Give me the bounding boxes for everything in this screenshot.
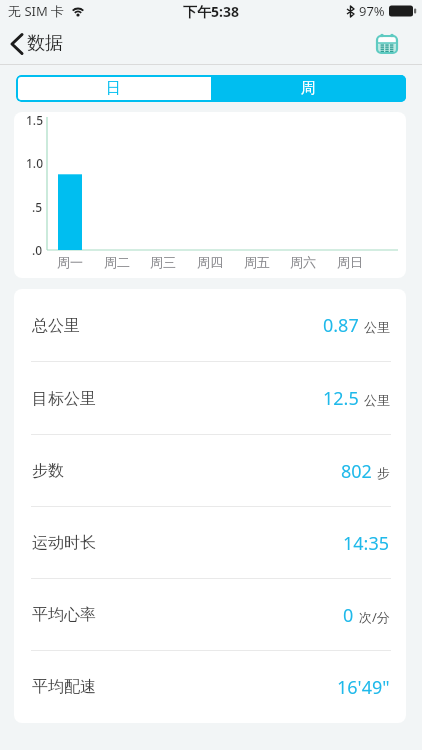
- button[interactable]: 平均配速: [14, 651, 406, 723]
- staticText: 步: [377, 465, 390, 481]
- button[interactable]: 目标公里: [14, 362, 406, 435]
- staticText: 周三: [150, 254, 176, 270]
- button[interactable]: 周: [211, 75, 406, 102]
- staticText: 周日: [337, 254, 363, 270]
- staticText: 公里: [364, 392, 390, 408]
- staticText: 下午5:38: [183, 2, 239, 21]
- staticText: 周一: [57, 254, 83, 270]
- staticText: 12.5: [323, 386, 359, 411]
- staticText: 总公里: [32, 316, 80, 336]
- staticText: 次/分: [359, 608, 390, 626]
- staticText: .5: [32, 199, 43, 215]
- staticText: 周六: [290, 254, 316, 270]
- button[interactable]: [374, 30, 400, 56]
- staticText: 步数: [32, 461, 64, 481]
- staticText: 日: [106, 79, 121, 98]
- staticText: 平均配速: [32, 677, 96, 697]
- staticText: 运动时长: [32, 533, 96, 553]
- staticText: 16'49": [337, 675, 390, 700]
- staticText: 周四: [197, 254, 223, 270]
- staticText: 数据: [27, 32, 63, 55]
- button[interactable]: 日: [16, 75, 211, 102]
- button[interactable]: 数据: [10, 32, 63, 55]
- staticText: 平均心率: [32, 605, 96, 625]
- staticText: .0: [32, 242, 43, 258]
- button[interactable]: 平均心率: [14, 579, 406, 651]
- staticText: 0.87: [323, 313, 359, 338]
- button[interactable]: 总公里: [14, 289, 406, 362]
- staticText: 1.5: [26, 112, 43, 128]
- staticText: 周二: [104, 254, 130, 270]
- staticText: 0: [343, 603, 354, 628]
- button[interactable]: 运动时长: [14, 507, 406, 579]
- staticText: 802: [341, 459, 372, 484]
- staticText: 目标公里: [32, 389, 96, 409]
- staticText: 周: [301, 79, 316, 98]
- staticText: 无 SIM 卡: [8, 2, 65, 20]
- staticText: 14:35: [343, 531, 390, 556]
- staticText: 97%: [359, 2, 385, 20]
- staticText: 周五: [244, 254, 270, 270]
- staticText: 公里: [364, 319, 390, 335]
- staticText: 1.0: [26, 155, 43, 171]
- button[interactable]: 步数: [14, 435, 406, 507]
